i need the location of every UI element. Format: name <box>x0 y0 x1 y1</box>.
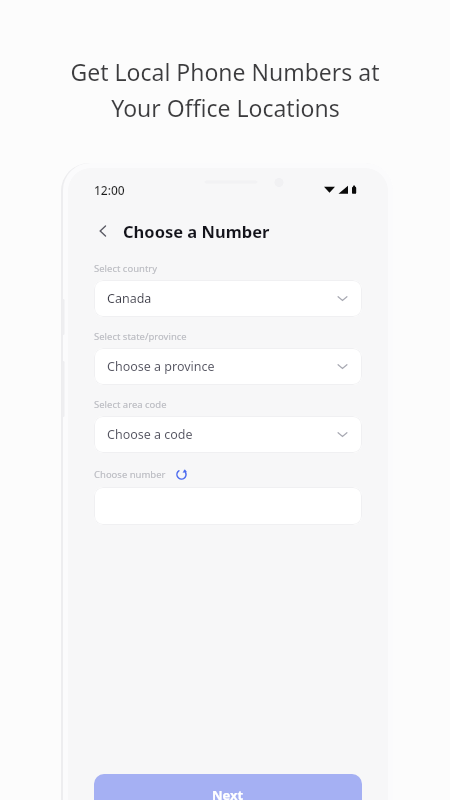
staticText: 12:00 <box>94 182 125 198</box>
button[interactable]: Choose a code <box>94 416 362 453</box>
staticText: Select area code <box>94 398 167 411</box>
staticText: Your Office Locations <box>111 92 340 123</box>
staticText: Get Local Phone Numbers at <box>70 56 380 87</box>
staticText: Select state/province <box>94 330 187 343</box>
staticText: Choose a province <box>107 358 215 375</box>
staticText: Choose a Number <box>123 220 270 242</box>
button[interactable]: Canada <box>94 280 362 317</box>
staticText: Canada <box>107 290 152 307</box>
staticText: Choose number <box>94 468 166 481</box>
button[interactable]: Back <box>92 220 114 242</box>
button[interactable] <box>94 487 362 525</box>
staticText: Next <box>212 786 244 800</box>
button[interactable]: Refresh number <box>173 466 189 482</box>
staticText: Choose a code <box>107 426 193 443</box>
button[interactable]: Choose a province <box>94 348 362 385</box>
button[interactable]: Next <box>94 774 362 800</box>
staticText: Select country <box>94 262 158 275</box>
